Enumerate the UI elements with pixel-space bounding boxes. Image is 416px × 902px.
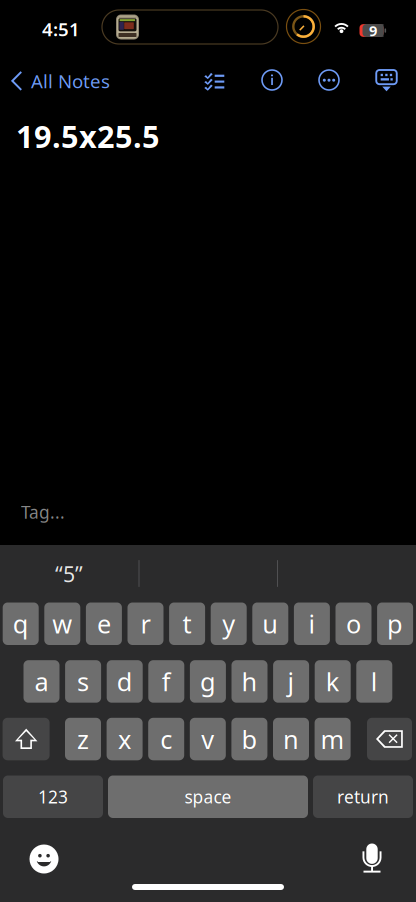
staticText: return bbox=[337, 785, 389, 808]
button[interactable]: p bbox=[377, 602, 413, 645]
button[interactable]: Info bbox=[252, 64, 292, 96]
staticText: 4:51 bbox=[42, 17, 80, 41]
staticText: “5” bbox=[55, 560, 83, 588]
button[interactable]: Checklist bbox=[194, 65, 235, 97]
button[interactable]: j bbox=[273, 660, 309, 703]
button[interactable]: e bbox=[86, 602, 122, 645]
button[interactable]: return bbox=[313, 775, 413, 818]
button[interactable]: Shift bbox=[3, 718, 50, 760]
button[interactable]: space bbox=[108, 775, 308, 818]
staticText: v bbox=[201, 722, 214, 756]
button[interactable]: t bbox=[169, 602, 205, 645]
staticText: 9 bbox=[369, 21, 377, 40]
button[interactable]: r bbox=[127, 602, 163, 645]
button[interactable]: s bbox=[65, 660, 101, 703]
button[interactable]: d bbox=[107, 660, 143, 703]
staticText: a bbox=[34, 665, 48, 698]
staticText: p bbox=[387, 607, 403, 640]
button[interactable]: n bbox=[273, 718, 309, 760]
staticText: r bbox=[140, 607, 150, 640]
button[interactable]: c bbox=[148, 718, 184, 760]
button[interactable]: b bbox=[231, 718, 267, 760]
staticText: h bbox=[241, 665, 257, 698]
button[interactable]: Dictate bbox=[349, 837, 395, 881]
staticText: j bbox=[288, 665, 295, 698]
button[interactable]: w bbox=[44, 602, 80, 645]
staticText: space bbox=[184, 785, 231, 808]
staticText: g bbox=[200, 665, 216, 698]
button[interactable]: o bbox=[335, 602, 371, 645]
staticText: e bbox=[97, 607, 111, 640]
staticText: f bbox=[162, 665, 171, 698]
button[interactable]: l bbox=[356, 660, 392, 703]
staticText: u bbox=[262, 607, 278, 640]
staticText: y bbox=[222, 607, 235, 640]
staticText: n bbox=[283, 722, 299, 756]
staticText: s bbox=[77, 665, 89, 698]
button[interactable]: i bbox=[294, 602, 330, 645]
button[interactable]: v bbox=[190, 718, 226, 760]
button[interactable]: Tag... bbox=[21, 501, 221, 523]
button[interactable]: Emoji bbox=[22, 837, 66, 881]
staticText: 123 bbox=[38, 785, 68, 808]
button[interactable]: h bbox=[231, 660, 267, 703]
button[interactable]: y bbox=[211, 602, 247, 645]
button[interactable]: x bbox=[107, 718, 143, 760]
button[interactable]: More bbox=[309, 64, 349, 96]
staticText: o bbox=[346, 607, 361, 640]
button[interactable]: “5” bbox=[0, 550, 138, 598]
button[interactable]: u bbox=[252, 602, 288, 645]
staticText: k bbox=[326, 665, 340, 698]
button[interactable]: f bbox=[148, 660, 184, 703]
staticText: d bbox=[117, 665, 133, 698]
staticText: 19.5x25.5 bbox=[16, 116, 160, 156]
button[interactable]: q bbox=[3, 602, 39, 645]
button[interactable]: 123 bbox=[3, 775, 103, 818]
button[interactable]: k bbox=[315, 660, 351, 703]
staticText: x bbox=[118, 722, 131, 756]
staticText: l bbox=[371, 665, 378, 698]
button[interactable]: m bbox=[315, 718, 351, 760]
staticText: w bbox=[52, 607, 72, 640]
staticText: m bbox=[321, 722, 345, 756]
staticText: Tag... bbox=[21, 500, 65, 523]
button[interactable]: a bbox=[23, 660, 59, 703]
button[interactable]: Hide Keyboard bbox=[366, 64, 407, 98]
button[interactable]: Delete bbox=[367, 718, 412, 760]
button[interactable]: g bbox=[190, 660, 226, 703]
staticText: c bbox=[160, 722, 172, 756]
staticText: b bbox=[241, 722, 257, 756]
staticText: All Notes bbox=[31, 69, 110, 93]
staticText: t bbox=[183, 607, 192, 640]
button[interactable]: z bbox=[65, 718, 101, 760]
staticText: q bbox=[13, 607, 29, 640]
button[interactable]: All Notes bbox=[9, 70, 159, 92]
staticText: i bbox=[308, 607, 315, 640]
staticText: z bbox=[77, 722, 89, 756]
